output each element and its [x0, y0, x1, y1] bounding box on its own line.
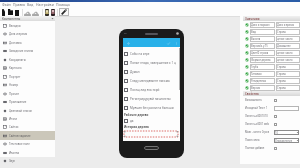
button[interactable]: Сайтах: [0, 122, 55, 131]
button[interactable]: More options: [173, 40, 179, 46]
button[interactable]: Save: [14, 7, 20, 17]
button[interactable]: Думал: [124, 67, 180, 76]
staticText: Строка: [277, 72, 286, 76]
button[interactable]: Текстовое поле: [0, 139, 55, 148]
staticText: Портрет: [9, 75, 21, 79]
staticText: целое число: [277, 58, 293, 62]
button[interactable]: Приложение: [0, 97, 55, 106]
staticText: Строка: [277, 30, 286, 34]
button[interactable]: Заводские списки: [0, 46, 55, 55]
staticText: Цветовой список: [9, 109, 33, 113]
button[interactable]: Tablet preview: [50, 7, 57, 17]
button[interactable]: Регистрируруюй начислены: [124, 94, 180, 103]
button[interactable]: Done: [165, 40, 171, 46]
staticText: Свойства: [245, 92, 259, 96]
staticText: целое число: [277, 51, 293, 55]
button[interactable]: Полное добавл: [243, 144, 300, 152]
button[interactable]: Файл: [1, 2, 12, 7]
button[interactable]: Попыт гнида, завершение х 1 ц: [124, 58, 180, 67]
button[interactable]: Итоги: [0, 114, 55, 123]
staticText: Текстовое поле: [9, 142, 30, 146]
button[interactable]: Логин №x0001010: [243, 112, 300, 120]
staticText: Дата и нормал: [251, 23, 270, 27]
staticText: Макс - место Строк: [245, 130, 270, 134]
button[interactable]: Доставка: [0, 38, 55, 47]
button[interactable]: Мужчин без раски на бытьши: [124, 103, 180, 112]
button[interactable]: Иконки: [0, 148, 55, 157]
button[interactable]: Портрет: [0, 72, 55, 81]
button[interactable]: Цвет(0 строка: [243, 49, 300, 56]
staticText: Типовая: [251, 72, 262, 76]
staticText: Сайтах: [9, 125, 19, 129]
button[interactable]: Вид: [243, 28, 300, 35]
button[interactable]: Дата и нормал: [243, 21, 300, 28]
staticText: Собы на игре: [130, 52, 150, 56]
staticText: Строка: [277, 86, 286, 90]
button[interactable]: Сайтов задание: [0, 131, 55, 140]
staticText: Формат дерева: [251, 58, 271, 62]
staticText: Настройки: [36, 2, 54, 7]
button[interactable]: Версия: [243, 84, 300, 91]
staticText: Строка: [277, 65, 286, 69]
button[interactable]: Download from cloud: [31, 7, 40, 17]
button[interactable]: Глубь: [243, 63, 300, 70]
button[interactable]: [124, 131, 178, 137]
staticText: Вкладки: [9, 24, 21, 28]
button[interactable]: Add: [125, 40, 131, 46]
staticText: Высота: [251, 37, 261, 41]
staticText: Следу менеджмент письма: [130, 79, 170, 83]
button[interactable]: Номер: [0, 80, 55, 89]
button[interactable]: Правка: [12, 2, 26, 7]
button[interactable]: Upload to cloud: [23, 7, 32, 17]
staticText: Дата и время: [9, 32, 28, 36]
button[interactable]: Версия(x.y.75: [243, 42, 300, 49]
staticText: Рабочее дерево: [124, 113, 149, 117]
button[interactable]: Настройки: [35, 2, 55, 7]
button[interactable]: Дата и время: [0, 29, 55, 38]
button[interactable]: Вид: [26, 2, 35, 7]
button[interactable]: Home: [144, 146, 159, 150]
staticText: Координаты: [9, 58, 26, 62]
button[interactable]: Резиденная: [243, 77, 300, 84]
button[interactable]: Вкладки: [0, 21, 55, 30]
button[interactable]: Поиск окна: [243, 136, 300, 144]
button[interactable]: Формат дерева: [243, 56, 300, 63]
button[interactable]: Макс - место Строк: [243, 128, 300, 136]
button[interactable]: да: [124, 117, 180, 125]
staticText: Резиденная: [251, 79, 266, 83]
button[interactable]: Edit tool: [59, 8, 69, 16]
staticText: Приложение: [9, 100, 27, 104]
staticText: да: [130, 119, 134, 123]
staticText: История дерева: [124, 125, 149, 129]
staticText: Полное добавл: [245, 146, 265, 150]
staticText: Определение: [275, 139, 296, 143]
button[interactable]: Собы на игре: [124, 49, 180, 58]
button[interactable]: Карточка: [0, 63, 55, 72]
staticText: Вид: [251, 30, 256, 34]
button[interactable]: Следу менеджмент письма: [124, 76, 180, 85]
staticText: Итоги: [9, 117, 18, 121]
button[interactable]: Высота: [243, 35, 300, 42]
staticText: 10: [275, 131, 296, 135]
button[interactable]: Помощь: [55, 2, 72, 7]
button[interactable]: Звук: [0, 156, 55, 165]
staticText: Строка: [277, 79, 286, 83]
staticText: Сайтов задание: [9, 134, 31, 138]
button[interactable]: New document: [1, 7, 7, 17]
button[interactable]: Координаты: [0, 55, 55, 64]
staticText: Логин №x0001 web: [245, 122, 270, 126]
button[interactable]: Цветовой список: [0, 106, 55, 115]
button[interactable]: Посещ лид эко-торй: [124, 85, 180, 94]
button[interactable]: Open folder: [7, 7, 14, 17]
button[interactable]: Phone preview: [44, 7, 51, 17]
staticText: Глубь: [251, 65, 259, 69]
button[interactable]: Исходный Текст 1: [243, 104, 300, 112]
staticText: Регистрируруюй начислены: [130, 97, 171, 101]
button[interactable]: Возможность дочернее: [243, 96, 300, 104]
button[interactable]: Логин №x0001 web: [243, 120, 300, 128]
staticText: Попыт гнида, завершение х 1 ц: [130, 61, 176, 65]
staticText: Мужчин без раски на бытьши: [130, 106, 174, 110]
button[interactable]: Типовая: [243, 70, 300, 77]
staticText: Номер: [9, 83, 19, 87]
button[interactable]: Прочее: [0, 89, 55, 98]
